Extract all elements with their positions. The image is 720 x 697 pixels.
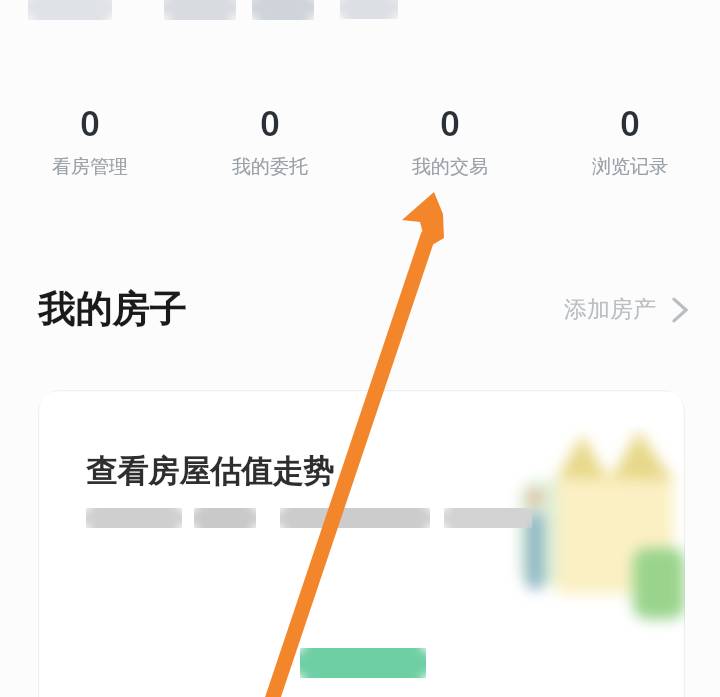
button[interactable]: 添加房产 xyxy=(558,289,694,330)
staticText: 0 xyxy=(260,100,280,146)
button[interactable]: 0 xyxy=(360,96,540,183)
other: Annotation arrow pointing to 我的交易 xyxy=(0,0,720,697)
staticText: 我的房子 xyxy=(38,286,186,333)
staticText: 看房管理 xyxy=(52,155,128,179)
button[interactable]: 0 xyxy=(180,96,360,183)
staticText: 查看房屋估值走势 xyxy=(86,452,334,491)
staticText: 添加房产 xyxy=(564,295,656,324)
staticText: 我的委托 xyxy=(232,155,308,179)
staticText: 浏览记录 xyxy=(592,155,668,179)
button[interactable]: 0 xyxy=(540,96,720,183)
staticText: 0 xyxy=(620,100,640,146)
staticText: 我的交易 xyxy=(412,155,488,179)
button[interactable]: 0 xyxy=(0,96,180,183)
staticText: 0 xyxy=(440,100,460,146)
button[interactable]: 查看房屋估值走势 xyxy=(38,390,685,697)
staticText: 0 xyxy=(80,100,100,146)
